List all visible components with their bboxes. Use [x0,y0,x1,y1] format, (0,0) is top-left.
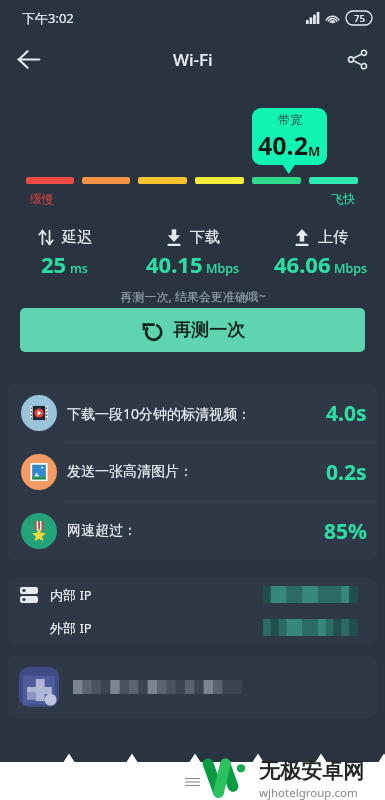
staticText: 上传 [318,228,348,247]
staticText: 46.06 [274,249,331,279]
staticText: 85% [324,517,367,546]
staticText: 外部 IP [50,619,92,637]
staticText: ms [70,260,88,277]
staticText: 下载一段10分钟的标清视频： [67,404,252,423]
staticText: 25 [41,249,67,279]
staticText: 4.0s [326,399,367,428]
staticText: 再测一次, 结果会更准确哦~ [120,288,266,304]
button[interactable]: Back [6,37,50,81]
staticText: 带宽 [278,112,302,127]
staticText: 下载 [190,228,220,247]
staticText: 75 [354,12,365,25]
staticText: 无极安卓网 [259,758,364,784]
staticText: 40.15 [146,249,203,279]
staticText: 再测一次 [173,319,245,342]
button[interactable] [8,656,377,718]
staticText: Wi-Fi [173,48,213,71]
staticText: 网速超过： [67,522,137,540]
button[interactable]: 下载一段10分钟的标清视频： [8,384,377,442]
staticText: M [308,142,321,160]
staticText: wjhotelgroup.com [259,785,358,800]
button[interactable]: Share [335,37,379,81]
staticText: Mbps [206,260,240,277]
staticText: 40.2 [258,128,308,162]
staticText: 0.2s [326,458,367,487]
staticText: 发送一张高清图片： [67,463,193,481]
staticText: 内部 IP [50,586,92,604]
staticText: 下午3:02 [22,9,74,27]
button[interactable]: 网速超过： [8,502,377,560]
staticText: 飞快 [331,191,355,206]
button[interactable]: 发送一张高清图片： [8,443,377,501]
staticText: Mbps [334,260,368,277]
button[interactable]: 再测一次 [20,308,365,352]
staticText: 延迟 [62,228,92,247]
staticText: 缓慢 [30,191,54,206]
